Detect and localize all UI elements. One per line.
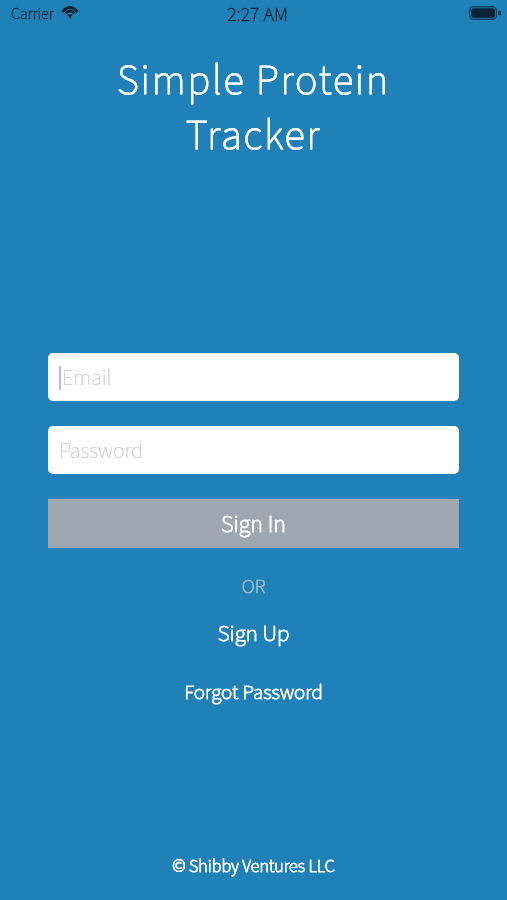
button[interactable]: Password <box>48 426 459 474</box>
other: Wi-Fi signal <box>61 4 79 20</box>
staticText: Password <box>59 435 143 466</box>
staticText: Sign In <box>48 507 459 541</box>
staticText: Simple Protein <box>0 51 507 111</box>
staticText: 2:27 AM <box>227 1 288 27</box>
staticText: Email <box>62 362 112 393</box>
other: Battery full <box>469 6 501 20</box>
staticText: Forgot Password <box>0 677 507 705</box>
staticText: Simple Protein <box>0 51 507 111</box>
staticText: Forgot Password <box>0 677 507 705</box>
staticText: © Shibby Ventures LLC <box>0 854 507 880</box>
staticText: Tracker <box>0 106 507 166</box>
button[interactable]: Email <box>48 353 459 401</box>
staticText: Carrier <box>11 3 54 26</box>
staticText: Sign In <box>48 507 459 541</box>
staticText: Sign Up <box>0 617 507 647</box>
staticText: OR <box>0 573 507 601</box>
button[interactable]: Sign In <box>48 499 459 548</box>
button[interactable]: Forgot Password <box>0 677 507 705</box>
staticText: © Shibby Ventures LLC <box>0 854 507 880</box>
staticText: Tracker <box>0 106 507 166</box>
staticText: Sign Up <box>0 617 507 647</box>
button[interactable]: Sign Up <box>0 617 507 647</box>
staticText: OR <box>0 573 507 601</box>
